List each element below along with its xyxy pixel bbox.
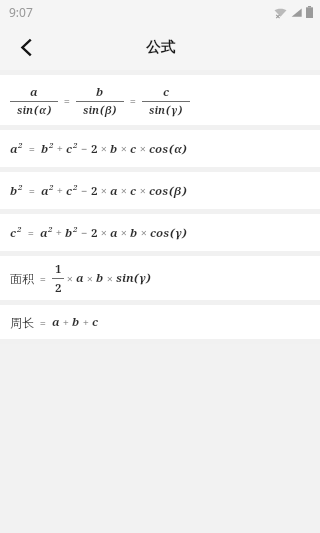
staticText: ) (178, 103, 183, 117)
staticText: 2 (18, 140, 23, 150)
staticText: b (110, 141, 118, 157)
staticText: γ (139, 270, 146, 286)
staticText: 2 (91, 183, 98, 199)
staticText: 面积 (10, 271, 34, 286)
staticText: a (30, 84, 38, 100)
button[interactable]: a (0, 130, 320, 167)
staticText: − (78, 225, 91, 240)
staticText: ) (146, 270, 151, 286)
staticText: ) (182, 225, 187, 241)
staticText: × (118, 183, 130, 198)
staticText: ( (100, 103, 105, 117)
staticText: 1 (55, 261, 62, 277)
staticText: × (64, 271, 76, 286)
staticText: ) (182, 183, 187, 199)
staticText: a (76, 270, 84, 286)
staticText: 2 (73, 224, 78, 234)
staticText: a (41, 183, 49, 199)
staticText: = (22, 225, 40, 240)
staticText: ) (47, 103, 52, 117)
staticText: 9:07 (9, 4, 33, 20)
staticText: b (96, 84, 104, 100)
staticText: c (163, 84, 170, 100)
staticText: cos (149, 141, 169, 157)
staticText: ( (166, 103, 171, 117)
button[interactable]: c (0, 214, 320, 251)
staticText: = (58, 93, 76, 108)
staticText: = (124, 93, 142, 108)
staticText: ) (182, 141, 187, 157)
staticText: β (105, 103, 112, 117)
staticText: ( (134, 270, 139, 286)
staticText: b (130, 225, 138, 241)
staticText: × (104, 271, 116, 286)
staticText: + (80, 315, 92, 330)
staticText: × (138, 225, 150, 240)
staticText: × (137, 141, 149, 156)
staticText: cos (150, 225, 170, 241)
staticText: = (23, 141, 41, 156)
staticText: a (52, 314, 60, 330)
button[interactable]: Back (4, 25, 48, 69)
staticText: γ (171, 103, 178, 117)
staticText: 周长 (10, 315, 34, 330)
staticText: 2 (73, 140, 78, 150)
staticText: + (54, 141, 66, 156)
staticText: c (66, 183, 73, 199)
staticText: sin (149, 103, 166, 117)
staticText: × (118, 141, 130, 156)
staticText: sin (17, 103, 34, 117)
staticText: + (53, 225, 65, 240)
staticText: a (40, 225, 48, 241)
staticText: 2 (17, 224, 22, 234)
staticText: sin (83, 103, 100, 117)
staticText: ( (170, 225, 175, 241)
button[interactable]: a (0, 75, 320, 125)
staticText: ( (34, 103, 39, 117)
staticText: 2 (91, 141, 98, 157)
staticText: γ (175, 225, 182, 241)
staticText: b (10, 183, 18, 199)
staticText: − (78, 141, 91, 156)
staticText: α (39, 103, 47, 117)
staticText: c (66, 141, 73, 157)
staticText: sin (116, 270, 134, 286)
staticText: a (110, 225, 118, 241)
staticText: a (110, 183, 118, 199)
staticText: 2 (73, 182, 78, 192)
staticText: 公式 (146, 38, 175, 56)
staticText: α (174, 141, 182, 157)
staticText: = (23, 183, 41, 198)
staticText: cos (149, 183, 169, 199)
staticText: ( (169, 141, 174, 157)
staticText: b (96, 270, 104, 286)
staticText: × (98, 183, 110, 198)
staticText: b (65, 225, 73, 241)
staticText: × (84, 271, 96, 286)
staticText: × (118, 225, 130, 240)
staticText: ( (169, 183, 174, 199)
staticText: a (10, 141, 18, 157)
staticText: b (72, 314, 80, 330)
staticText: c (92, 314, 99, 330)
button[interactable]: 面积 (0, 256, 320, 300)
staticText: ) (112, 103, 117, 117)
staticText: c (130, 183, 137, 199)
button[interactable]: b (0, 172, 320, 209)
staticText: β (174, 183, 182, 199)
staticText: 2 (18, 182, 23, 192)
staticText: c (10, 225, 17, 241)
staticText: c (130, 141, 137, 157)
staticText: × (137, 183, 149, 198)
staticText: 2 (49, 140, 54, 150)
staticText: 2 (49, 182, 54, 192)
staticText: 2 (91, 225, 98, 241)
staticText: × (98, 141, 110, 156)
staticText: 2 (55, 280, 62, 296)
button[interactable]: 周长 (0, 305, 320, 339)
staticText: 2 (48, 224, 53, 234)
staticText: + (54, 183, 66, 198)
staticText: × (98, 225, 110, 240)
staticText: = (34, 271, 52, 286)
staticText: + (60, 315, 72, 330)
